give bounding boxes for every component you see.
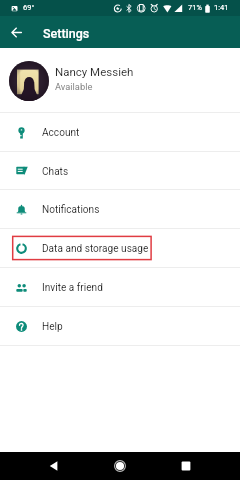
button[interactable]: Back xyxy=(34,452,74,480)
button[interactable]: Home xyxy=(100,452,140,480)
staticText: Nancy Messieh xyxy=(55,65,134,78)
staticText: Invite a friend xyxy=(42,282,103,294)
staticText: Account xyxy=(42,127,80,139)
button[interactable]: Invite a friend xyxy=(0,268,240,306)
button[interactable]: Account xyxy=(0,113,240,151)
button[interactable]: Nancy Messieh xyxy=(0,48,240,112)
button[interactable]: Notifications xyxy=(0,190,240,228)
staticText: Help xyxy=(42,321,63,333)
staticText: Data and storage usage xyxy=(42,243,149,255)
staticText: Chats xyxy=(42,166,69,178)
button[interactable]: Recent apps xyxy=(166,452,206,480)
staticText: 1:41 xyxy=(214,3,229,12)
button[interactable]: Back xyxy=(0,16,32,48)
button[interactable]: Data and storage usage xyxy=(0,229,240,267)
button[interactable]: Help xyxy=(0,307,240,345)
button[interactable]: Chats xyxy=(0,152,240,189)
staticText: Available xyxy=(55,81,93,92)
staticText: 71% xyxy=(188,3,202,12)
staticText: Settings xyxy=(43,26,90,41)
staticText: 69° xyxy=(23,3,35,12)
staticText: Notifications xyxy=(42,204,100,216)
